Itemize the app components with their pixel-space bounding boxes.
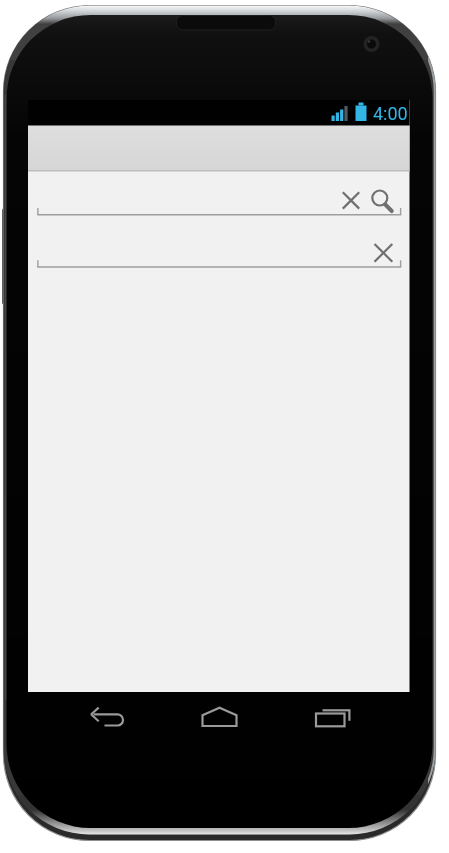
button[interactable]: [37, 234, 367, 268]
button[interactable]: [371, 240, 396, 265]
staticText: 4:00: [373, 103, 408, 124]
button[interactable]: [195, 700, 245, 738]
button[interactable]: [308, 700, 358, 738]
button[interactable]: [37, 180, 337, 216]
button[interactable]: [339, 188, 363, 212]
button[interactable]: [85, 700, 135, 738]
button[interactable]: [368, 186, 394, 213]
